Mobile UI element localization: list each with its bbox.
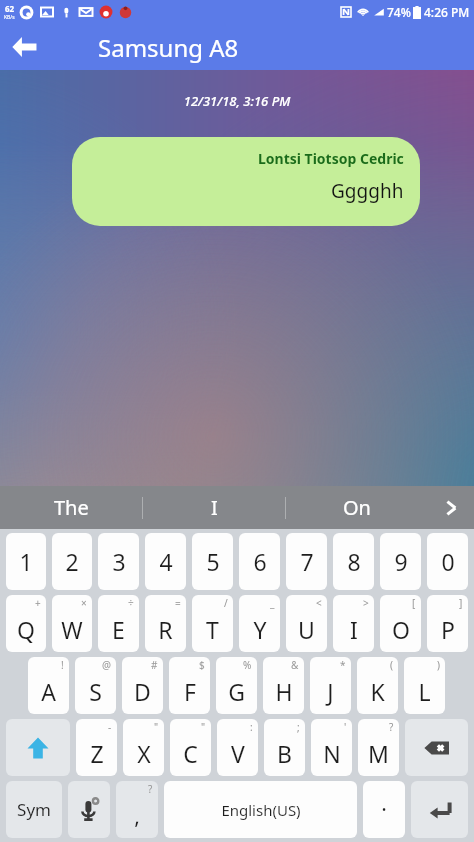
- staticText: Gggghh: [331, 178, 404, 204]
- staticText: ): [437, 658, 440, 672]
- staticText: _: [270, 596, 275, 610]
- staticText: ]: [459, 596, 463, 610]
- staticText: !: [61, 658, 64, 672]
- button[interactable]: Lontsi Tiotsop Cedric: [72, 137, 420, 226]
- staticText: U: [298, 614, 315, 645]
- button[interactable]: Shift: [6, 719, 70, 776]
- staticText: ;: [297, 720, 300, 734]
- staticText: T: [206, 614, 219, 645]
- staticText: +: [35, 596, 41, 610]
- staticText: Z: [90, 738, 104, 769]
- staticText: ·: [381, 795, 387, 824]
- button[interactable]: More suggestions: [428, 486, 474, 529]
- button[interactable]: /: [192, 595, 233, 652]
- button[interactable]: 3: [98, 533, 139, 590]
- staticText: W: [61, 614, 83, 645]
- button[interactable]: 8: [333, 533, 374, 590]
- staticText: E: [112, 614, 125, 645]
- button[interactable]: I: [143, 486, 285, 529]
- staticText: Sym: [17, 798, 51, 821]
- staticText: ÷: [128, 596, 134, 610]
- button[interactable]: <: [286, 595, 327, 652]
- button[interactable]: Sym: [6, 781, 62, 838]
- staticText: S: [89, 676, 102, 707]
- button[interactable]: ·: [363, 781, 405, 838]
- staticText: @: [102, 658, 111, 672]
- button[interactable]: @: [75, 657, 116, 714]
- button[interactable]: 7: [286, 533, 327, 590]
- button[interactable]: >: [333, 595, 374, 652]
- button[interactable]: ?: [116, 781, 158, 838]
- staticText: [: [412, 596, 416, 610]
- staticText: 0: [441, 546, 455, 577]
- staticText: Y: [253, 614, 267, 645]
- button[interactable]: ;: [264, 719, 305, 776]
- staticText: KB/s: [4, 14, 15, 21]
- button[interactable]: On: [286, 486, 428, 529]
- button[interactable]: 1: [6, 533, 46, 590]
- staticText: ×: [81, 596, 87, 610]
- staticText: The: [54, 494, 89, 521]
- staticText: L: [418, 676, 431, 707]
- button[interactable]: 9: [380, 533, 421, 590]
- staticText: R: [158, 614, 173, 645]
- button[interactable]: +: [6, 595, 46, 652]
- staticText: On: [343, 494, 371, 521]
- staticText: Samsung A8: [98, 31, 239, 64]
- button[interactable]: Back: [0, 24, 48, 70]
- button[interactable]: ÷: [98, 595, 139, 652]
- button[interactable]: -: [76, 719, 117, 776]
- staticText: V: [231, 738, 245, 769]
- staticText: =: [175, 596, 181, 610]
- staticText: Q: [17, 614, 35, 645]
- staticText: M: [368, 738, 389, 769]
- staticText: Lontsi Tiotsop Cedric: [258, 149, 404, 168]
- button[interactable]: ': [311, 719, 352, 776]
- staticText: 1: [19, 546, 33, 577]
- button[interactable]: ?: [358, 719, 399, 776]
- staticText: X: [137, 738, 151, 769]
- staticText: >: [363, 596, 369, 610]
- staticText: A: [41, 676, 56, 707]
- button[interactable]: Voice input: [68, 781, 110, 838]
- button[interactable]: (: [357, 657, 398, 714]
- button[interactable]: 0: [427, 533, 468, 590]
- button[interactable]: 4: [145, 533, 186, 590]
- staticText: B: [277, 738, 292, 769]
- staticText: $: [199, 658, 205, 672]
- button[interactable]: =: [145, 595, 186, 652]
- button[interactable]: $: [169, 657, 210, 714]
- button[interactable]: :: [217, 719, 258, 776]
- staticText: 8: [347, 546, 361, 577]
- staticText: *: [340, 658, 346, 672]
- staticText: P: [441, 614, 455, 645]
- button[interactable]: *: [310, 657, 351, 714]
- button[interactable]: !: [28, 657, 69, 714]
- button[interactable]: ): [404, 657, 445, 714]
- staticText: ?: [148, 782, 153, 796]
- staticText: &: [291, 658, 299, 672]
- button[interactable]: ": [170, 719, 211, 776]
- button[interactable]: %: [216, 657, 257, 714]
- staticText: I: [211, 494, 218, 521]
- button[interactable]: Backspace: [405, 719, 468, 776]
- staticText: ": [154, 720, 159, 734]
- button[interactable]: _: [239, 595, 280, 652]
- staticText: ': [344, 720, 347, 734]
- button[interactable]: The: [0, 486, 142, 529]
- button[interactable]: ": [123, 719, 164, 776]
- staticText: :: [250, 720, 253, 734]
- staticText: 12/31/18, 3:16 PM: [0, 92, 474, 110]
- button[interactable]: &: [263, 657, 304, 714]
- staticText: D: [134, 676, 151, 707]
- button[interactable]: 5: [192, 533, 233, 590]
- button[interactable]: #: [122, 657, 163, 714]
- button[interactable]: English(US): [164, 781, 357, 838]
- button[interactable]: [: [380, 595, 421, 652]
- staticText: #: [151, 658, 158, 672]
- button[interactable]: ]: [427, 595, 468, 652]
- button[interactable]: Enter: [411, 781, 468, 838]
- button[interactable]: ×: [52, 595, 92, 652]
- button[interactable]: 2: [52, 533, 92, 590]
- button[interactable]: 6: [239, 533, 280, 590]
